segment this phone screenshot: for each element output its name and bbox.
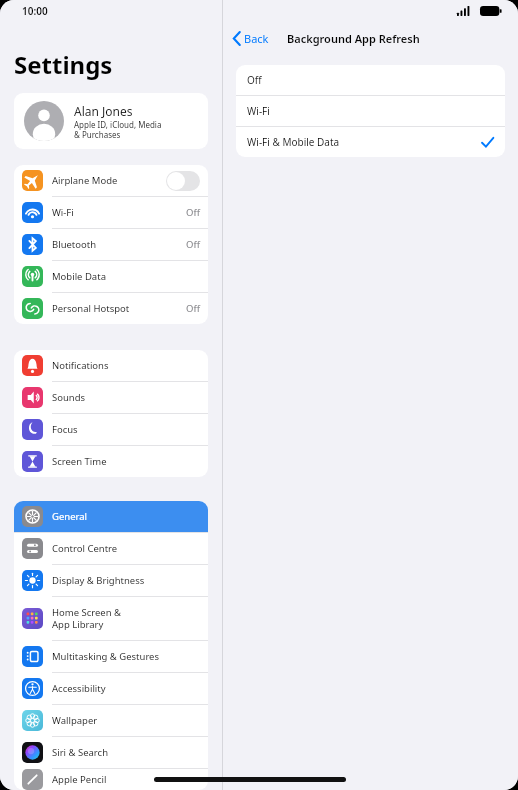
button[interactable]: Screen Time xyxy=(14,446,208,477)
button[interactable]: Alan Jones xyxy=(14,93,208,149)
staticText: Control Centre xyxy=(52,542,200,555)
button[interactable]: Sounds xyxy=(14,382,208,413)
staticText: Alan Jones xyxy=(74,103,133,119)
staticText: Wallpaper xyxy=(52,714,200,727)
button[interactable]: Wi-Fi xyxy=(14,197,208,228)
staticText: 10:00 xyxy=(22,4,48,18)
staticText: Accessibility xyxy=(52,682,200,695)
button[interactable]: Display & Brightness xyxy=(14,565,208,596)
button[interactable]: Control Centre xyxy=(14,533,208,564)
staticText: Wi-Fi & Mobile Data xyxy=(247,135,481,149)
staticText: Airplane Mode xyxy=(52,174,166,187)
button[interactable]: Wi-Fi xyxy=(236,96,505,126)
button[interactable]: Siri & Search xyxy=(14,737,208,768)
staticText: Off xyxy=(186,238,200,251)
staticText: Sounds xyxy=(52,391,200,404)
button[interactable]: Apple Pencil xyxy=(14,769,208,790)
button[interactable]: Bluetooth xyxy=(14,229,208,260)
staticText: Off xyxy=(247,73,494,87)
staticText: Apple Pencil xyxy=(52,773,200,786)
button[interactable]: Accessibility xyxy=(14,673,208,704)
button[interactable]: General xyxy=(14,501,208,532)
staticText: Personal Hotspot xyxy=(52,302,186,315)
staticText: Back xyxy=(244,31,269,46)
staticText: General xyxy=(52,510,200,523)
button[interactable]: Multitasking & Gestures xyxy=(14,641,208,672)
button[interactable]: Mobile Data xyxy=(14,261,208,292)
button[interactable]: Personal Hotspot xyxy=(14,293,208,324)
staticText: Notifications xyxy=(52,359,200,372)
button[interactable]: Airplane Mode xyxy=(14,165,208,196)
staticText: Off xyxy=(186,302,200,315)
button[interactable]: Back xyxy=(229,28,273,49)
button[interactable]: Home Screen & App Library xyxy=(14,597,208,640)
button[interactable]: Wi-Fi & Mobile Data xyxy=(236,127,505,157)
staticText: Screen Time xyxy=(52,455,200,468)
staticText: Multitasking & Gestures xyxy=(52,650,200,663)
staticText: Home Screen & App Library xyxy=(52,606,200,631)
button[interactable]: Notifications xyxy=(14,350,208,381)
staticText: Settings xyxy=(14,48,113,81)
staticText: Focus xyxy=(52,423,200,436)
button[interactable]: Airplane Mode toggle xyxy=(166,171,200,191)
staticText: Bluetooth xyxy=(52,238,186,251)
button[interactable]: Off xyxy=(236,65,505,95)
staticText: Background App Refresh xyxy=(287,31,420,46)
staticText: Off xyxy=(186,206,200,219)
staticText: Display & Brightness xyxy=(52,574,200,587)
button[interactable]: Focus xyxy=(14,414,208,445)
staticText: Mobile Data xyxy=(52,270,200,283)
staticText: Siri & Search xyxy=(52,746,200,759)
staticText: Apple ID, iCloud, Media & Purchases xyxy=(74,119,162,140)
button[interactable]: Wallpaper xyxy=(14,705,208,736)
staticText: Wi-Fi xyxy=(52,206,186,219)
staticText: Wi-Fi xyxy=(247,104,494,118)
